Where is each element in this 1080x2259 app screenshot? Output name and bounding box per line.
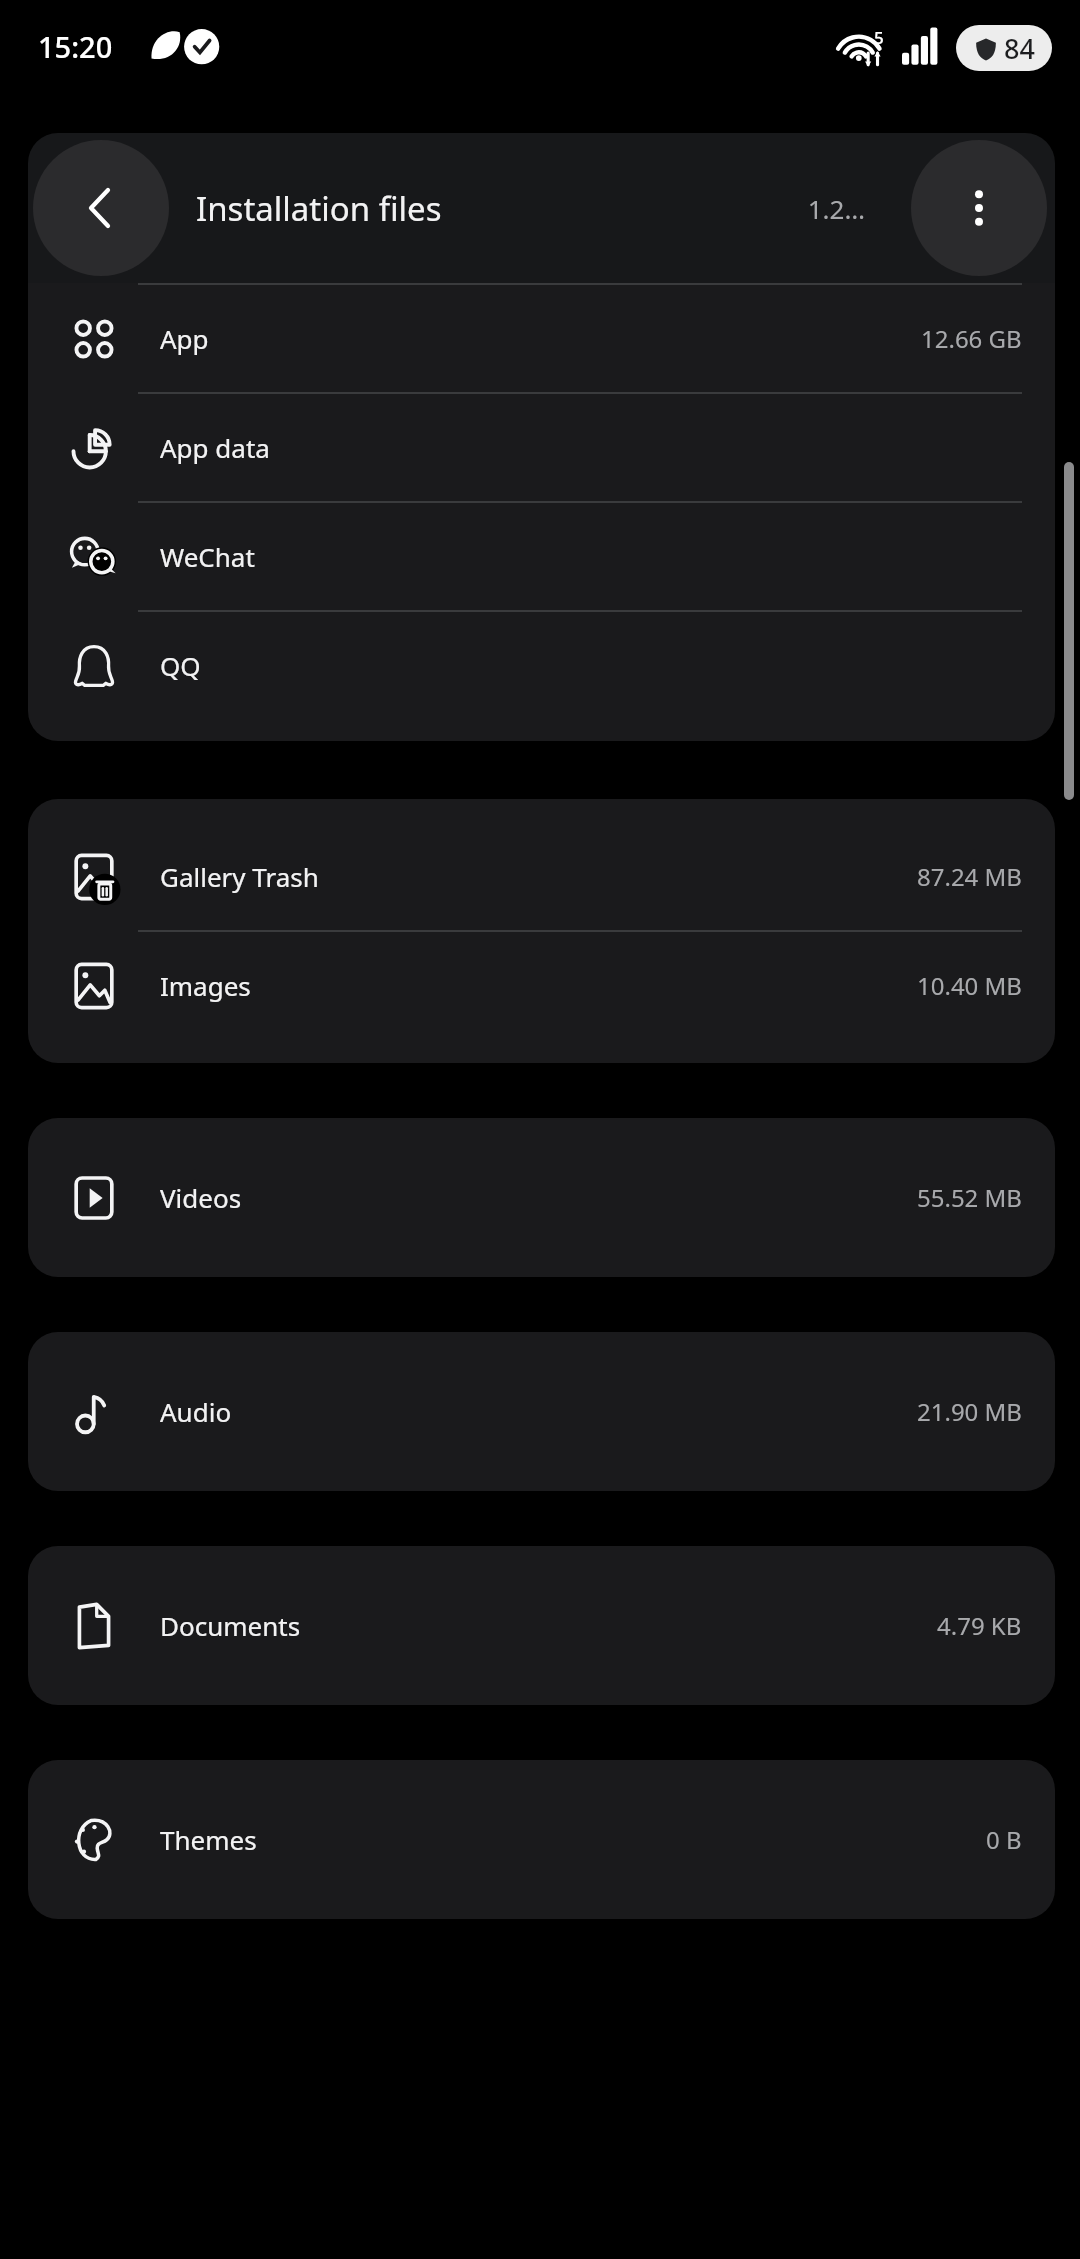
staticText: WeChat <box>160 539 255 574</box>
button[interactable]: Themes <box>28 1786 1055 1893</box>
button[interactable]: App data <box>28 394 1055 503</box>
button[interactable]: WeChat <box>28 503 1055 612</box>
button[interactable]: Images <box>28 932 1055 1039</box>
staticText: 84 <box>1004 30 1035 67</box>
button[interactable]: More options <box>911 140 1047 276</box>
staticText: QQ <box>160 648 201 683</box>
staticText: 87.24 MB <box>917 860 1022 893</box>
staticText: 5 <box>874 26 884 49</box>
button[interactable]: Audio <box>28 1358 1055 1465</box>
button[interactable]: Videos <box>28 1144 1055 1251</box>
staticText: 10.40 MB <box>917 969 1022 1002</box>
staticText: 4.79 KB <box>937 1609 1022 1642</box>
staticText: Gallery Trash <box>160 859 319 894</box>
staticText: 21.90 MB <box>917 1395 1022 1428</box>
staticText: Audio <box>160 1394 232 1429</box>
staticText: App data <box>160 430 270 465</box>
button[interactable]: App <box>28 285 1055 394</box>
staticText: Videos <box>160 1180 242 1215</box>
staticText: 0 B <box>986 1823 1022 1856</box>
staticText: Installation files <box>196 186 442 231</box>
button[interactable]: Documents <box>28 1572 1055 1679</box>
button[interactable]: Gallery Trash <box>28 823 1055 932</box>
staticText: 12.66 GB <box>921 322 1022 355</box>
staticText: 1.2… <box>807 191 865 226</box>
button[interactable]: QQ <box>28 612 1055 719</box>
button[interactable]: Back <box>33 140 169 276</box>
staticText: Images <box>160 968 251 1003</box>
staticText: 15:20 <box>38 27 113 66</box>
staticText: 55.52 MB <box>917 1181 1022 1214</box>
staticText: Themes <box>160 1822 257 1857</box>
staticText: App <box>160 321 209 356</box>
staticText: Documents <box>160 1608 301 1643</box>
